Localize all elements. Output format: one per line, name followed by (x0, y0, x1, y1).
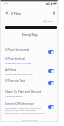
button[interactable]: X Plan via Text (1, 79, 58, 83)
staticText: 9:41 (4, 2, 8, 5)
staticText: Show with flip to X Plan (5, 61, 32, 64)
staticText: Ad View (5, 68, 17, 72)
button[interactable]: More options (50, 9, 57, 16)
button[interactable]: Toggle (48, 69, 54, 73)
button[interactable]: Share To Plan and Record (1, 90, 58, 97)
button[interactable]: Ad View (1, 68, 58, 75)
button[interactable]: Share (42, 19, 54, 24)
staticText: X Plan (11, 11, 21, 15)
staticText: Recognize a reference when the screen is… (5, 106, 46, 115)
button[interactable]: Screen Off Inference (1, 102, 58, 115)
staticText: Screen Off Inference (5, 102, 34, 106)
button[interactable]: Toggle (48, 105, 54, 109)
staticText: Advertisement with filter (5, 72, 33, 75)
button[interactable]: Banner (5, 26, 57, 29)
staticText: X Plan Vertical (5, 57, 25, 61)
staticText: Share (47, 20, 53, 23)
staticText: X Plan Horizontal (5, 48, 30, 52)
button[interactable]: X Plan Vertical (1, 57, 58, 64)
button[interactable]: Toggle (48, 50, 54, 54)
staticText: Native defaults (5, 94, 22, 97)
staticText: Share To Plan and Record (5, 90, 41, 94)
staticText: X Plan via Text (5, 79, 25, 83)
button[interactable]: Toggle (48, 81, 54, 85)
staticText: EmojiTag (22, 32, 38, 37)
button[interactable]: Back (3, 9, 10, 16)
button[interactable]: X Plan Horizontal (1, 48, 58, 52)
